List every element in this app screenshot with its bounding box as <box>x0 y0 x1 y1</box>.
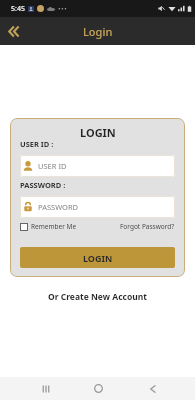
staticText: PASSWORD <box>38 202 79 212</box>
button[interactable]: Back <box>136 377 168 400</box>
button[interactable]: Or Create New Account <box>0 290 195 304</box>
button[interactable]: Back <box>2 19 26 43</box>
button[interactable]: PASSWORD <box>20 196 175 218</box>
staticText: Login <box>83 24 113 39</box>
staticText: Or Create New Account <box>48 291 147 303</box>
staticText: LOGIN <box>83 252 113 264</box>
staticText: 5:45 <box>11 4 25 14</box>
staticText: Remember Me <box>31 222 77 231</box>
button[interactable]: USER ID <box>20 155 175 177</box>
staticText: Forgot Password? <box>120 222 175 231</box>
button[interactable]: Remember Me <box>20 222 77 231</box>
staticText: PASSWORD : <box>20 180 66 190</box>
button[interactable]: Recent apps <box>30 377 62 400</box>
button[interactable]: Home <box>82 377 114 400</box>
button[interactable]: Forgot Password? <box>120 222 175 231</box>
button[interactable]: LOGIN <box>20 247 175 268</box>
staticText: LOGIN <box>80 125 116 139</box>
staticText: USER ID : <box>20 139 54 149</box>
staticText: USER ID <box>38 161 67 171</box>
